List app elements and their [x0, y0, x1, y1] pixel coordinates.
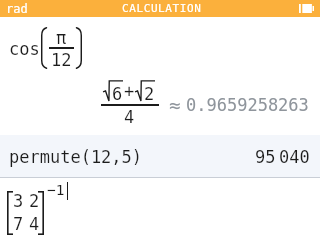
staticText: 4: [29, 214, 40, 234]
button[interactable]: rad: [0, 0, 320, 17]
staticText: 6: [112, 84, 123, 104]
staticText: 2: [29, 191, 40, 211]
staticText: ≈: [169, 94, 181, 116]
staticText: rad: [6, 2, 28, 16]
staticText: 040: [279, 147, 310, 167]
staticText: 12: [51, 50, 72, 70]
staticText: CALCULATION: [122, 2, 202, 15]
other: Battery: [299, 4, 314, 13]
staticText: 95: [255, 147, 276, 167]
staticText: 3: [13, 191, 24, 211]
staticText: 0.9659258263: [186, 95, 309, 115]
staticText: cos: [9, 39, 40, 59]
staticText: −1: [47, 182, 65, 199]
staticText: 2: [144, 84, 155, 104]
button[interactable]: permute(12,5): [0, 135, 320, 177]
staticText: π: [56, 28, 67, 48]
staticText: +: [124, 81, 135, 101]
staticText: permute(12,5): [9, 147, 143, 167]
staticText: 4: [124, 107, 135, 127]
staticText: 7: [13, 214, 24, 234]
